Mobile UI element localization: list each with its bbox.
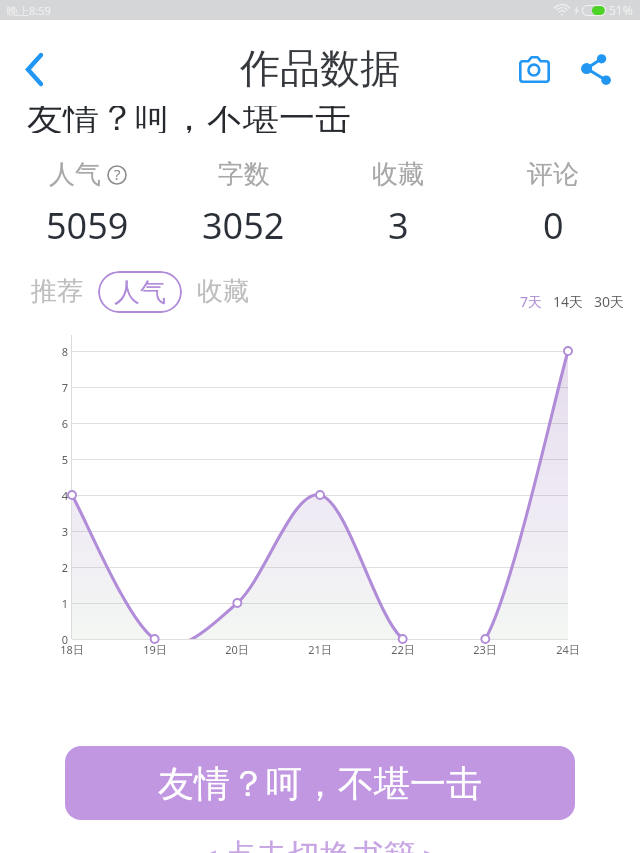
- staticText: 24日: [548, 642, 588, 657]
- staticText: 7: [40, 380, 68, 395]
- staticText: ?: [114, 164, 121, 184]
- staticText: 5: [40, 452, 68, 467]
- button[interactable]: 字数: [163, 158, 323, 253]
- staticText: 3: [388, 201, 409, 250]
- staticText: ＜点击切换书籍＞: [192, 836, 448, 853]
- staticText: 人气: [49, 158, 101, 191]
- staticText: 评论: [527, 158, 579, 191]
- button[interactable]: 友情？呵，不堪一击: [65, 746, 575, 820]
- staticText: 收藏: [197, 275, 249, 308]
- staticText: 3052: [202, 201, 285, 250]
- staticText: 51%: [609, 2, 633, 18]
- staticText: 友情？呵，不堪一击: [27, 106, 351, 133]
- button[interactable]: Share: [567, 41, 623, 97]
- button[interactable]: 推荐: [25, 267, 89, 316]
- staticText: 推荐: [31, 275, 83, 308]
- staticText: 23日: [465, 642, 505, 657]
- staticText: 0: [543, 201, 564, 250]
- staticText: 2: [40, 560, 68, 575]
- staticText: 14天: [553, 292, 584, 311]
- button[interactable]: 评论: [473, 158, 633, 253]
- staticText: 21日: [300, 642, 340, 657]
- staticText: 人气: [114, 276, 166, 309]
- button[interactable]: 收藏: [318, 158, 478, 253]
- staticText: 晚上8:59: [7, 3, 51, 18]
- staticText: 友情？呵，不堪一击: [158, 761, 482, 806]
- button[interactable]: 人气: [7, 158, 167, 253]
- staticText: 30天: [594, 292, 625, 311]
- staticText: 0: [40, 632, 68, 647]
- button[interactable]: 30天: [591, 288, 628, 315]
- staticText: 收藏: [372, 158, 424, 191]
- staticText: 作品数据: [240, 43, 400, 93]
- staticText: 6: [40, 416, 68, 431]
- staticText: 5059: [46, 201, 129, 250]
- button[interactable]: ＜点击切换书籍＞: [0, 836, 640, 853]
- button[interactable]: 人气: [98, 271, 182, 313]
- staticText: 字数: [218, 158, 270, 191]
- staticText: 20日: [217, 642, 257, 657]
- button[interactable]: 收藏: [191, 267, 255, 316]
- button[interactable]: Camera: [506, 41, 562, 97]
- staticText: 7天: [520, 292, 543, 311]
- button[interactable]: 14天: [550, 288, 587, 315]
- button[interactable]: Back: [6, 41, 62, 97]
- staticText: 4: [40, 488, 68, 503]
- staticText: 18日: [52, 642, 92, 657]
- staticText: 3: [40, 524, 68, 539]
- staticText: 8: [40, 344, 68, 359]
- staticText: 1: [40, 596, 68, 611]
- staticText: 19日: [135, 642, 175, 657]
- button[interactable]: 7天: [517, 288, 546, 315]
- staticText: 22日: [383, 642, 423, 657]
